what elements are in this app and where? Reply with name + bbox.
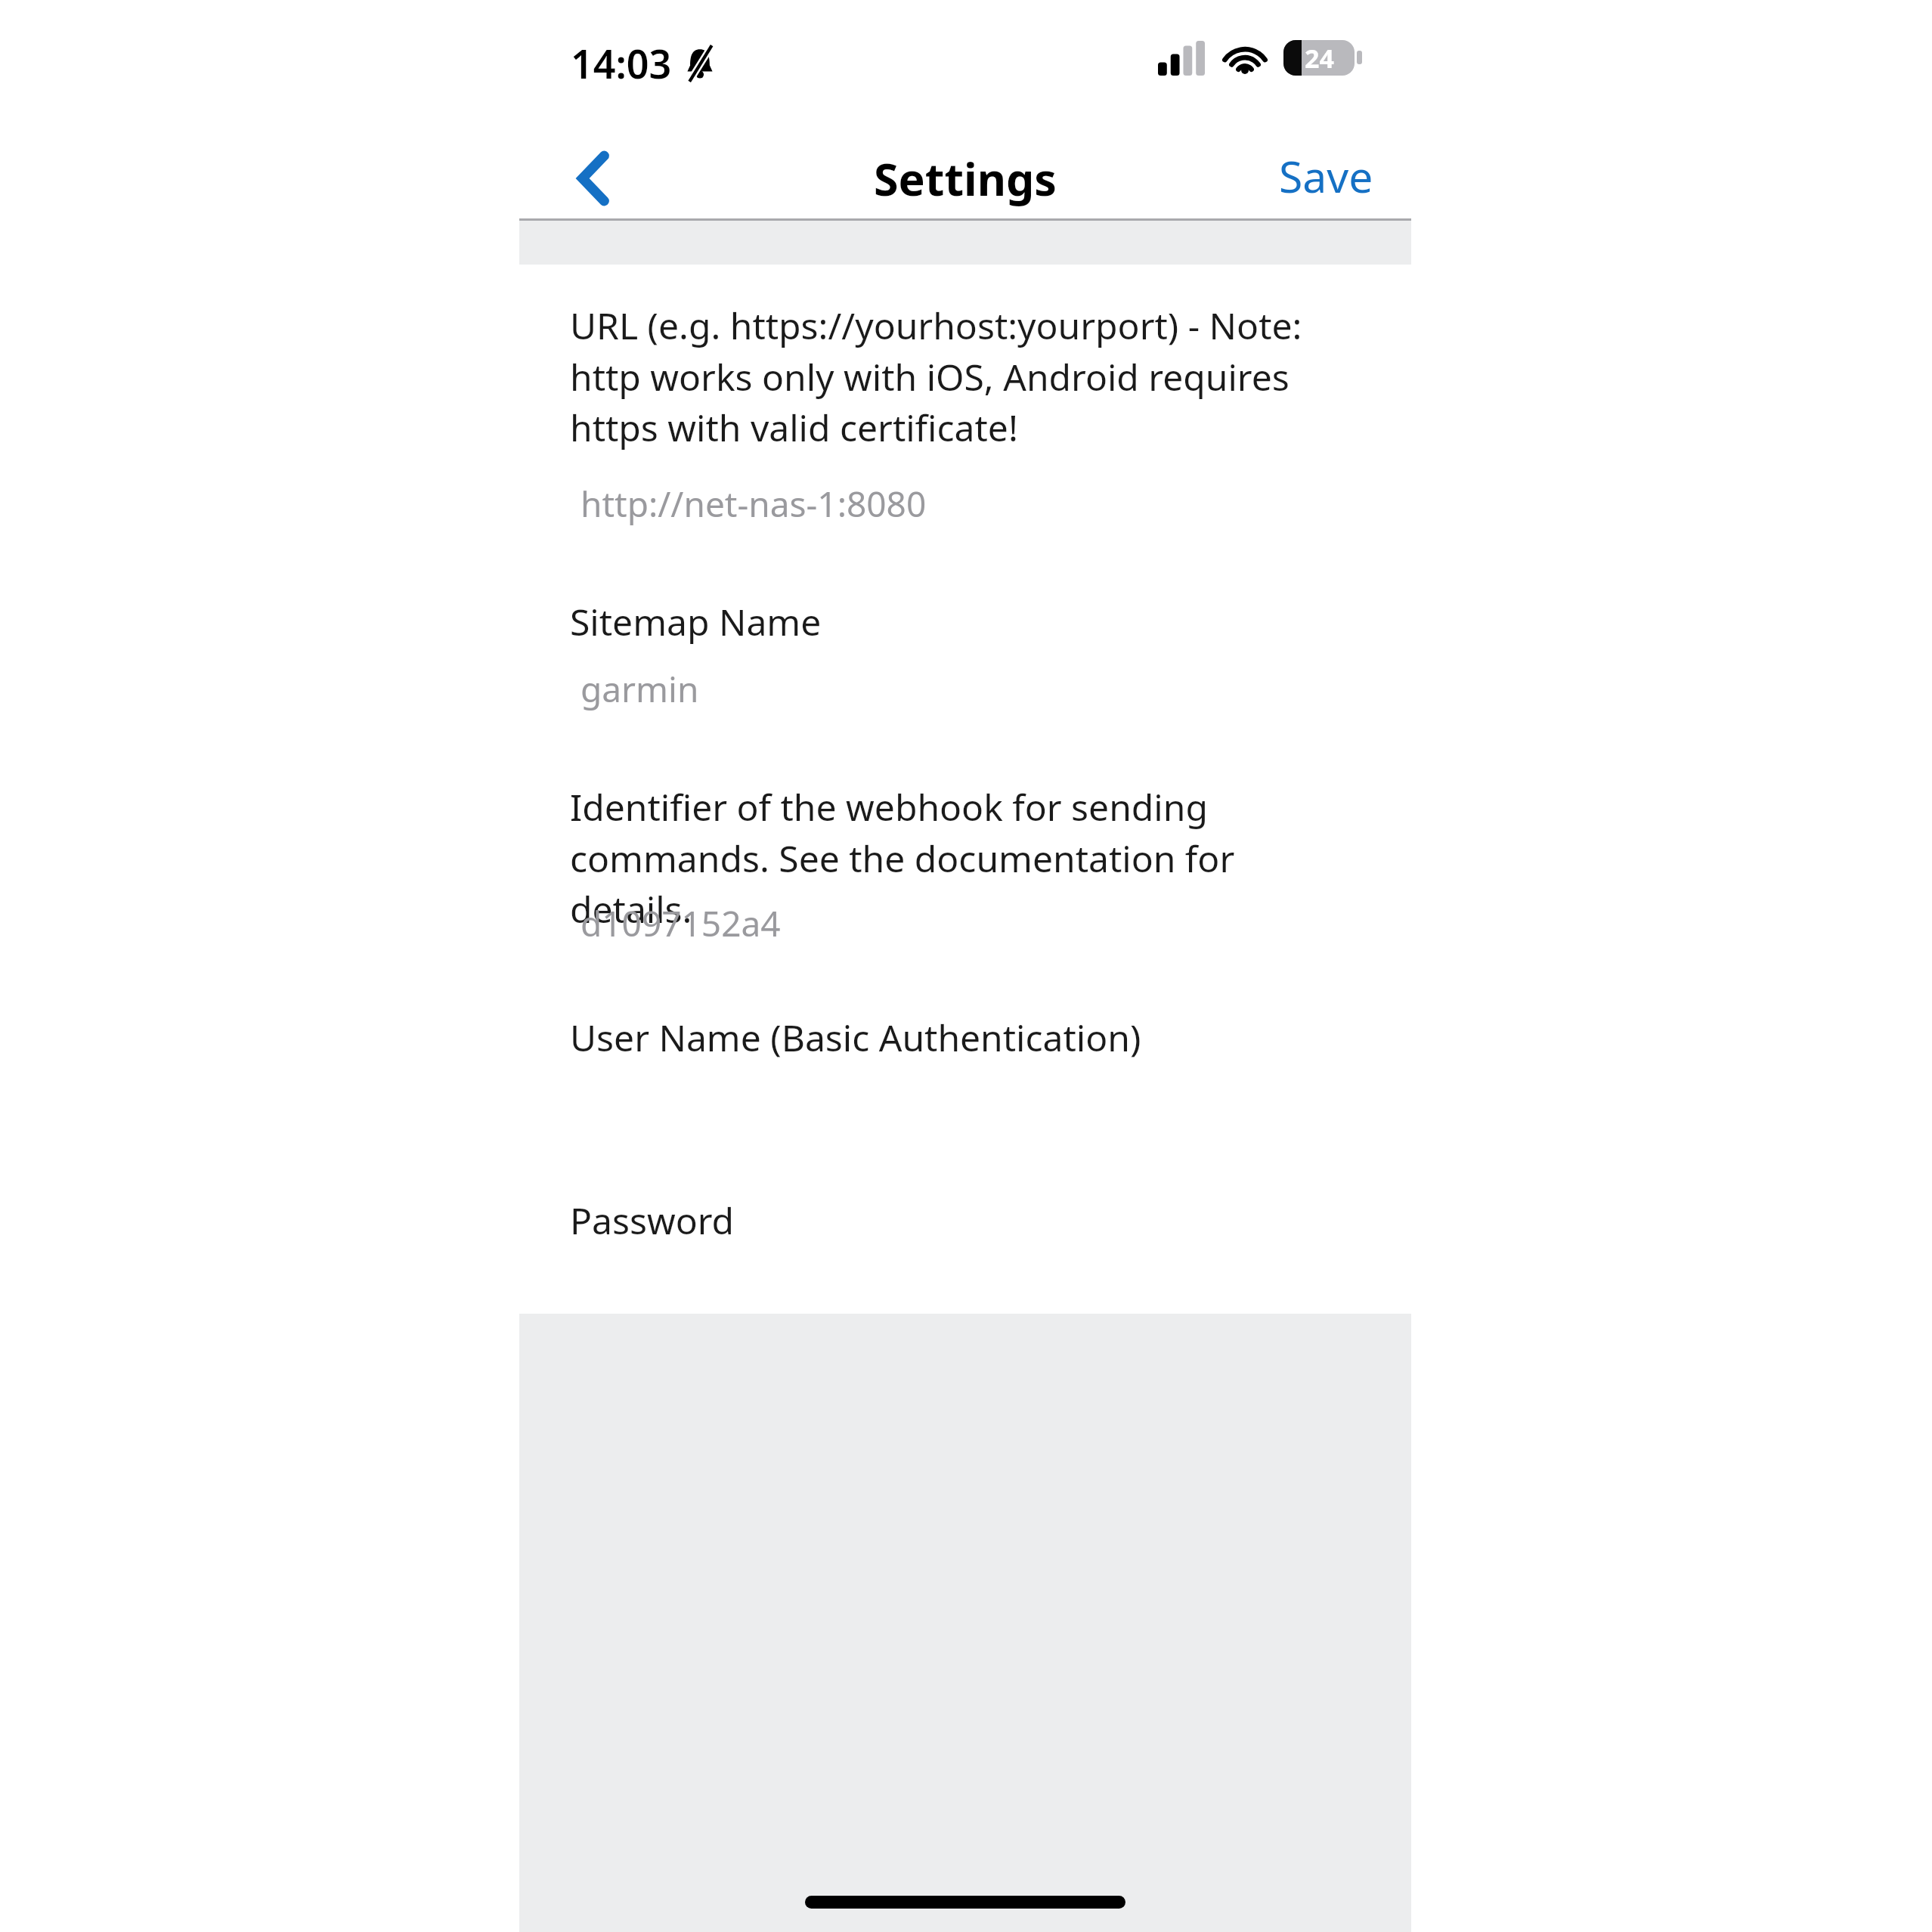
button[interactable]: Sitemap Name bbox=[546, 581, 1348, 663]
staticText: garmin bbox=[581, 665, 699, 713]
staticText: Sitemap Name bbox=[570, 597, 822, 646]
staticText: 14:03 bbox=[571, 36, 672, 90]
button[interactable]: d1097152a4 bbox=[557, 883, 1343, 964]
button[interactable]: http://net-nas-1:8080 bbox=[557, 463, 1343, 544]
staticText: Save bbox=[1279, 147, 1373, 206]
button[interactable]: garmin bbox=[557, 649, 1343, 729]
staticText: 24 bbox=[1305, 41, 1334, 76]
staticText: User Name (Basic Authentication) bbox=[570, 1013, 1141, 1062]
button[interactable]: Back bbox=[550, 135, 637, 222]
staticText: Settings bbox=[874, 148, 1057, 209]
staticText: URL (e.g. https://yourhost:yourport) - N… bbox=[570, 301, 1340, 452]
staticText: d1097152a4 bbox=[581, 899, 781, 947]
staticText: http://net-nas-1:8080 bbox=[581, 480, 927, 528]
button[interactable]: Password bbox=[546, 1179, 1348, 1262]
button[interactable]: Save bbox=[1256, 130, 1396, 222]
button[interactable]: User Name (Basic Authentication) bbox=[546, 996, 1348, 1079]
staticText: Password bbox=[570, 1196, 735, 1245]
button[interactable]: Identifier of the webhook for sending co… bbox=[546, 766, 1348, 950]
button[interactable]: URL (e.g. https://yourhost:yourport) - N… bbox=[546, 284, 1348, 469]
staticText: Identifier of the webhook for sending co… bbox=[570, 782, 1340, 933]
